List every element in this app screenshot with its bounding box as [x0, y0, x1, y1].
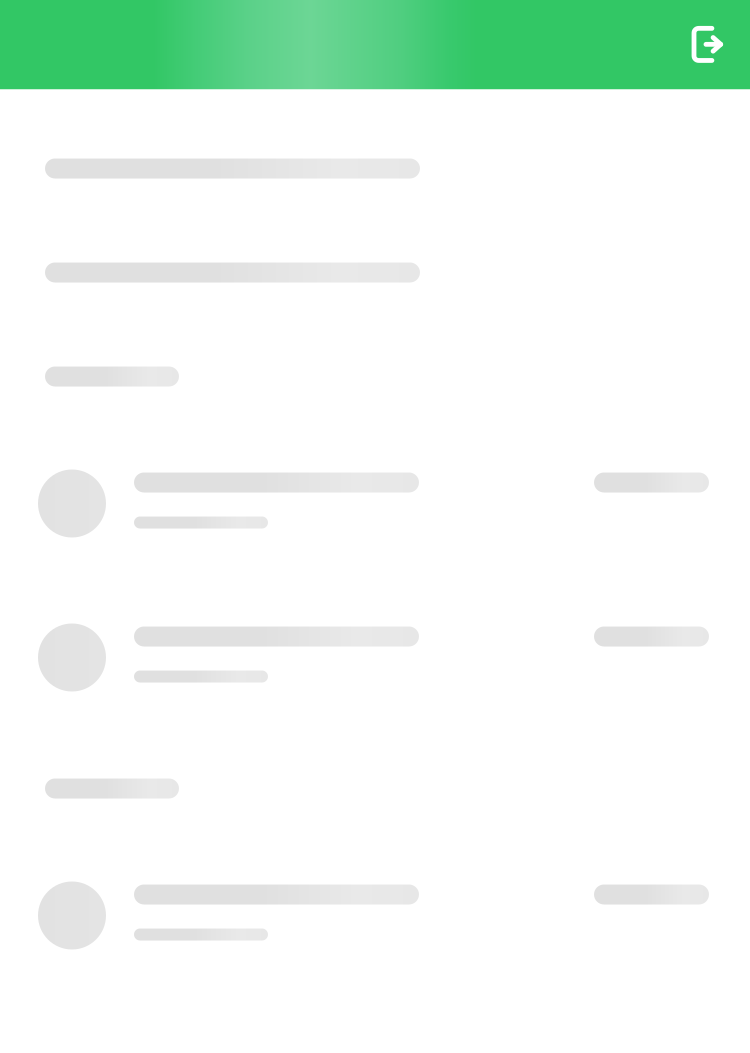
button[interactable]: Loading item [38, 468, 750, 537]
button[interactable]: Log out [688, 24, 726, 65]
button[interactable]: Loading item [38, 622, 750, 691]
button[interactable]: Loading item [38, 880, 750, 949]
